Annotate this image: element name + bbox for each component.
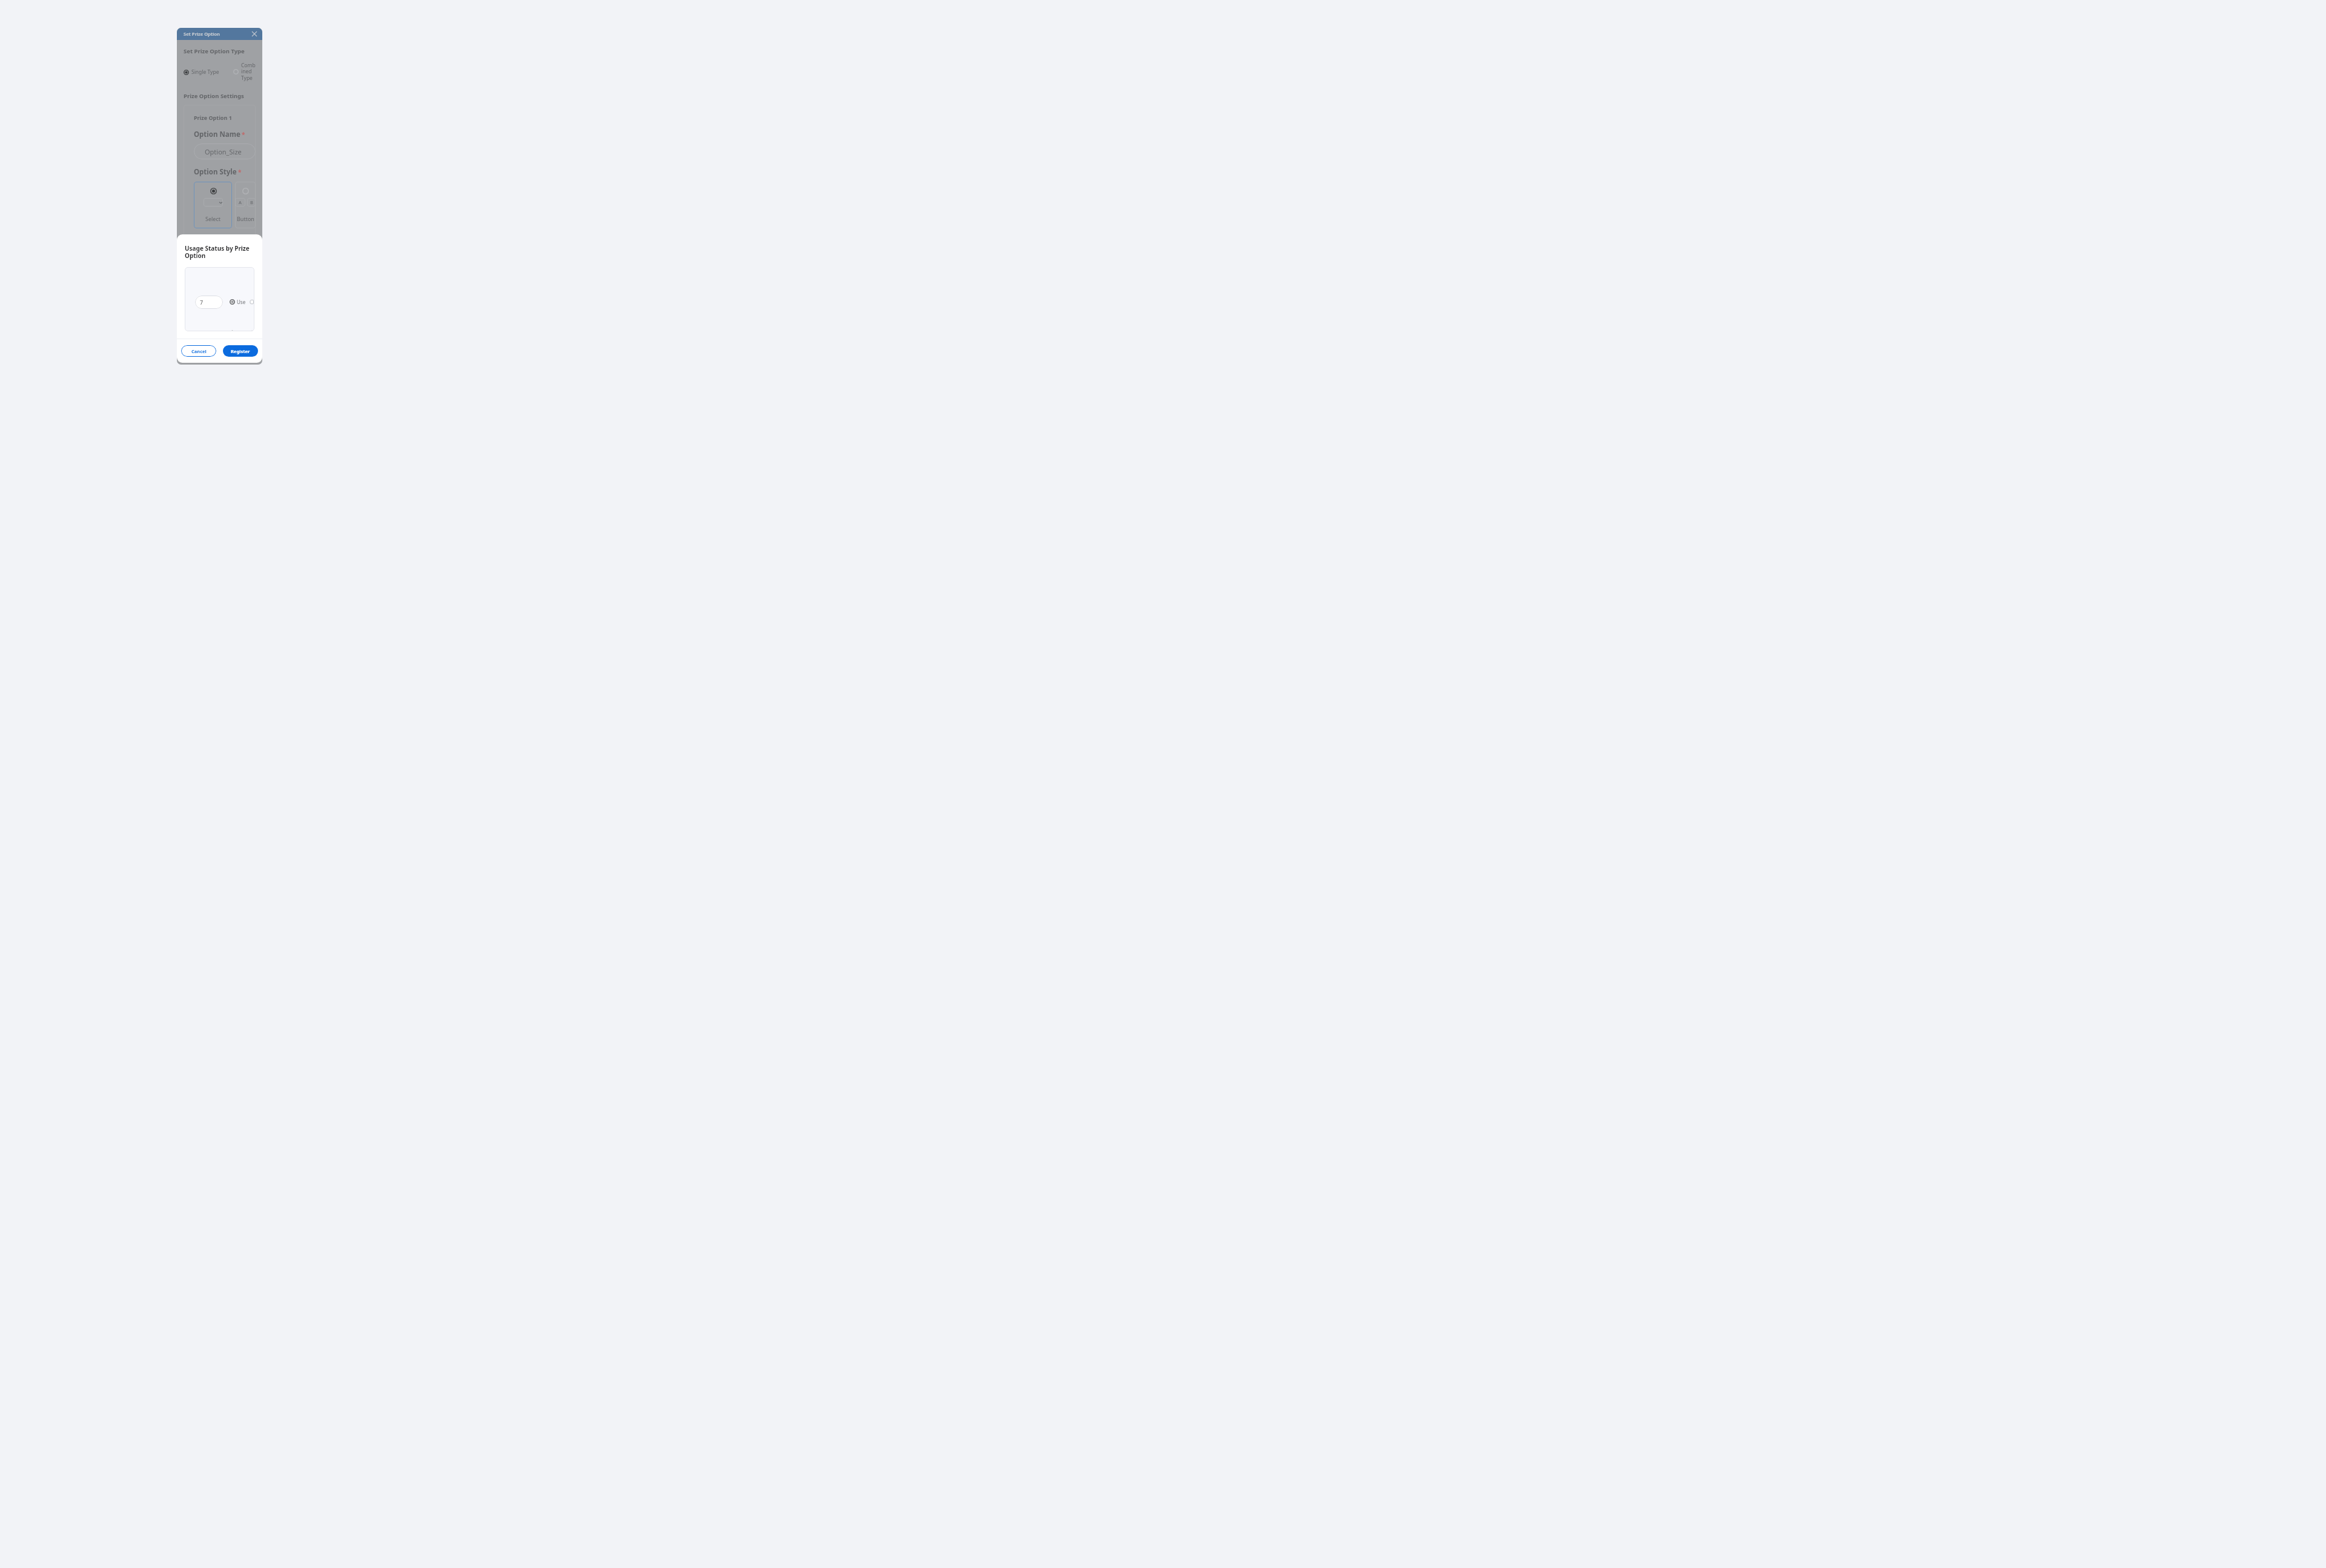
staticText: Please select a size. xyxy=(205,258,256,274)
staticText: Option Style xyxy=(194,167,237,177)
staticText: * xyxy=(238,168,242,176)
staticText: Usage Status by Prize Option xyxy=(185,244,262,260)
staticText: A xyxy=(239,199,242,205)
button[interactable]: Cancel xyxy=(181,345,216,357)
staticText: Prize Option 1 xyxy=(194,114,232,121)
button[interactable]: Please select a size. xyxy=(194,258,256,274)
button[interactable]: 7 xyxy=(195,296,223,309)
staticText: Select xyxy=(205,215,220,222)
staticText: Register xyxy=(231,348,250,354)
button[interactable]: A xyxy=(235,182,256,228)
staticText: Use xyxy=(237,299,246,305)
button[interactable]: Combined Type xyxy=(233,62,256,82)
staticText: Cancel xyxy=(191,348,207,354)
button[interactable]: Register xyxy=(223,345,258,357)
button[interactable]: Option_Size xyxy=(194,144,256,159)
staticText: Prize Option Settings xyxy=(184,92,244,100)
button[interactable]: Close xyxy=(250,30,259,38)
button[interactable]: Single Type xyxy=(184,68,219,76)
staticText: Option_Size xyxy=(205,147,242,156)
button[interactable]: Use xyxy=(230,299,246,305)
staticText: Single Type xyxy=(191,68,219,76)
staticText: Set Prize Option Type xyxy=(184,47,245,55)
staticText: Combined Type xyxy=(241,62,256,82)
staticText: 7 xyxy=(200,299,204,306)
staticText: * xyxy=(242,130,245,139)
button[interactable]: Select xyxy=(194,182,232,228)
staticText: B xyxy=(250,199,253,205)
button[interactable]: Not in Use xyxy=(250,277,254,326)
staticText: Option Description xyxy=(194,236,256,254)
staticText: Button xyxy=(237,215,254,222)
staticText: Option Name xyxy=(194,130,240,139)
staticText: Set Prize Option xyxy=(184,31,220,37)
